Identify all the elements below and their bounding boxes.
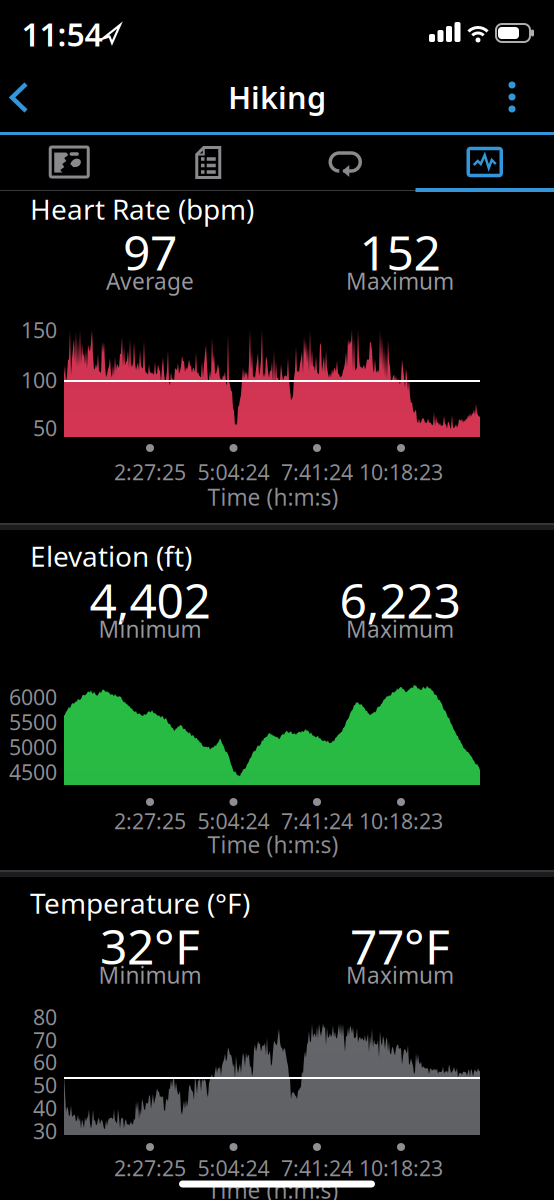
staticText: 5:04:24 <box>197 807 269 835</box>
staticText: 2:27:25 <box>114 1154 186 1182</box>
staticText: 80 <box>33 1003 57 1031</box>
staticText: Minimum <box>98 614 201 644</box>
staticText: 100 <box>21 366 57 394</box>
staticText: Time (h:m:s) <box>207 482 338 512</box>
staticText: 5:04:24 <box>197 1154 269 1182</box>
staticText: 97 <box>123 220 177 284</box>
staticText: 2:27:25 <box>114 807 186 835</box>
staticText: 77°F <box>350 914 450 978</box>
staticText: 7:41:24 <box>281 807 353 835</box>
staticText: 50 <box>33 1071 57 1099</box>
button[interactable]: Details <box>139 134 277 190</box>
staticText: 60 <box>33 1048 57 1076</box>
staticText: 4,402 <box>89 568 210 632</box>
staticText: Maximum <box>346 960 454 990</box>
staticText: Heart Rate (bpm) <box>30 190 254 228</box>
staticText: 10:18:23 <box>359 458 443 486</box>
staticText: Time (h:m:s) <box>207 1175 338 1200</box>
staticText: Hiking <box>228 77 326 117</box>
staticText: 6,223 <box>339 568 460 632</box>
staticText: Minimum <box>98 960 201 990</box>
staticText: Temperature (°F) <box>30 884 250 922</box>
staticText: 40 <box>33 1094 57 1122</box>
staticText: 10:18:23 <box>359 1154 443 1182</box>
staticText: 70 <box>33 1026 57 1054</box>
staticText: 7:41:24 <box>281 1154 353 1182</box>
staticText: Maximum <box>346 614 454 644</box>
staticText: Time (h:m:s) <box>207 829 338 859</box>
staticText: 30 <box>33 1117 57 1145</box>
staticText: 6000 <box>9 683 57 711</box>
staticText: 7:41:24 <box>281 458 353 486</box>
staticText: 50 <box>33 414 57 442</box>
staticText: 32°F <box>100 914 200 978</box>
staticText: 152 <box>359 220 440 284</box>
staticText: Maximum <box>346 266 454 296</box>
button[interactable]: Overview <box>0 134 138 190</box>
staticText: 5500 <box>9 708 57 736</box>
button[interactable]: More options <box>490 75 534 119</box>
staticText: 10:18:23 <box>359 807 443 835</box>
button[interactable]: Charts <box>416 134 554 190</box>
button[interactable]: Laps <box>277 134 415 190</box>
staticText: 11:54 <box>21 13 102 55</box>
staticText: 2:27:25 <box>114 458 186 486</box>
staticText: Average <box>106 266 194 296</box>
staticText: Elevation (ft) <box>30 537 192 575</box>
staticText: 5000 <box>9 733 57 761</box>
staticText: 150 <box>21 316 57 344</box>
button[interactable]: Back <box>0 70 44 124</box>
staticText: 4500 <box>9 758 57 786</box>
staticText: 5:04:24 <box>197 458 269 486</box>
